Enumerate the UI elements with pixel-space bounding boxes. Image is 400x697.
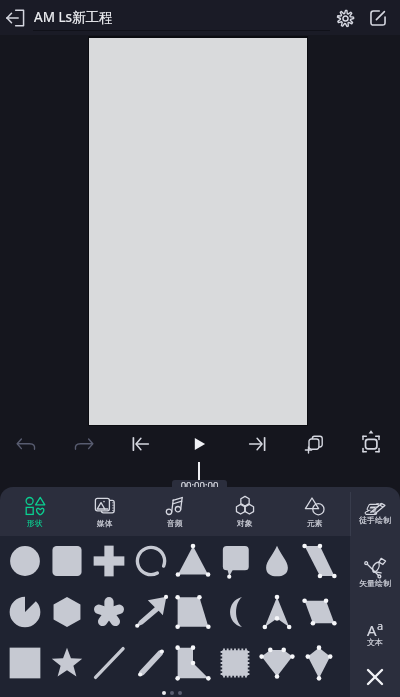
- button[interactable]: Shape 11: [88, 594, 130, 630]
- button[interactable]: 矢量绘制: [350, 552, 400, 593]
- button[interactable]: Shape 18: [46, 645, 88, 681]
- button[interactable]: Shape 2: [46, 543, 88, 579]
- button[interactable]: Settings: [332, 5, 358, 31]
- button[interactable]: Shape 20: [130, 645, 172, 681]
- button[interactable]: Shape 4: [130, 543, 172, 579]
- button[interactable]: Shape 10: [46, 594, 88, 630]
- button[interactable]: Play: [185, 430, 215, 458]
- button[interactable]: Add layer: [299, 430, 329, 458]
- button[interactable]: Shape 24: [298, 645, 340, 681]
- button[interactable]: 形状: [0, 487, 70, 536]
- staticText: 音频: [167, 518, 183, 528]
- staticText: 00:00:00: [172, 479, 227, 492]
- staticText: 矢量绘制: [359, 578, 391, 588]
- button[interactable]: Undo: [11, 430, 41, 458]
- button[interactable]: Shape 7: [256, 543, 298, 579]
- button[interactable]: A: [350, 615, 400, 653]
- button[interactable]: Shape 8: [298, 543, 340, 579]
- button[interactable]: Shape 21: [172, 645, 214, 681]
- staticText: 文本: [367, 637, 383, 647]
- button[interactable]: Export: [365, 5, 391, 31]
- button[interactable]: Shape 12: [130, 594, 172, 630]
- button[interactable]: 对象: [210, 487, 280, 536]
- button[interactable]: Shape 5: [172, 543, 214, 579]
- button[interactable]: 徒手绘制: [350, 497, 400, 530]
- staticText: A: [367, 620, 377, 640]
- button[interactable]: Shape 6: [214, 543, 256, 579]
- button[interactable]: Shape 23: [256, 645, 298, 681]
- button[interactable]: Shape 19: [88, 645, 130, 681]
- staticText: 形状: [27, 518, 43, 528]
- button[interactable]: Shape 15: [256, 594, 298, 630]
- staticText: a: [377, 618, 384, 633]
- button[interactable]: Redo: [69, 430, 99, 458]
- button[interactable]: Shape 14: [214, 594, 256, 630]
- staticText: 元素: [307, 518, 323, 528]
- staticText: 徒手绘制: [359, 515, 391, 525]
- button[interactable]: Shape 1: [3, 543, 46, 579]
- button[interactable]: Shape 22: [214, 645, 256, 681]
- button[interactable]: Shape 13: [172, 594, 214, 630]
- button[interactable]: Shape 17: [3, 645, 46, 681]
- button[interactable]: Fit to frame: [356, 430, 386, 458]
- staticText: 媒体: [97, 518, 113, 528]
- button[interactable]: 音频: [140, 487, 210, 536]
- staticText: AM Ls新工程: [34, 8, 113, 26]
- button[interactable]: 媒体: [70, 487, 140, 536]
- button[interactable]: Back: [0, 0, 31, 35]
- button[interactable]: Close: [350, 664, 400, 690]
- button[interactable]: Skip to start: [126, 430, 156, 458]
- button[interactable]: Shape 16: [298, 594, 340, 630]
- button[interactable]: Shape 9: [3, 594, 46, 630]
- staticText: 对象: [237, 518, 253, 528]
- button[interactable]: Skip to end: [242, 430, 272, 458]
- button[interactable]: Shape 3: [88, 543, 130, 579]
- button[interactable]: 元素: [280, 487, 350, 536]
